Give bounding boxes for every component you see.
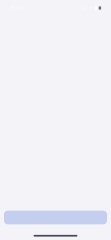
button[interactable]: Continue — [4, 211, 107, 224]
